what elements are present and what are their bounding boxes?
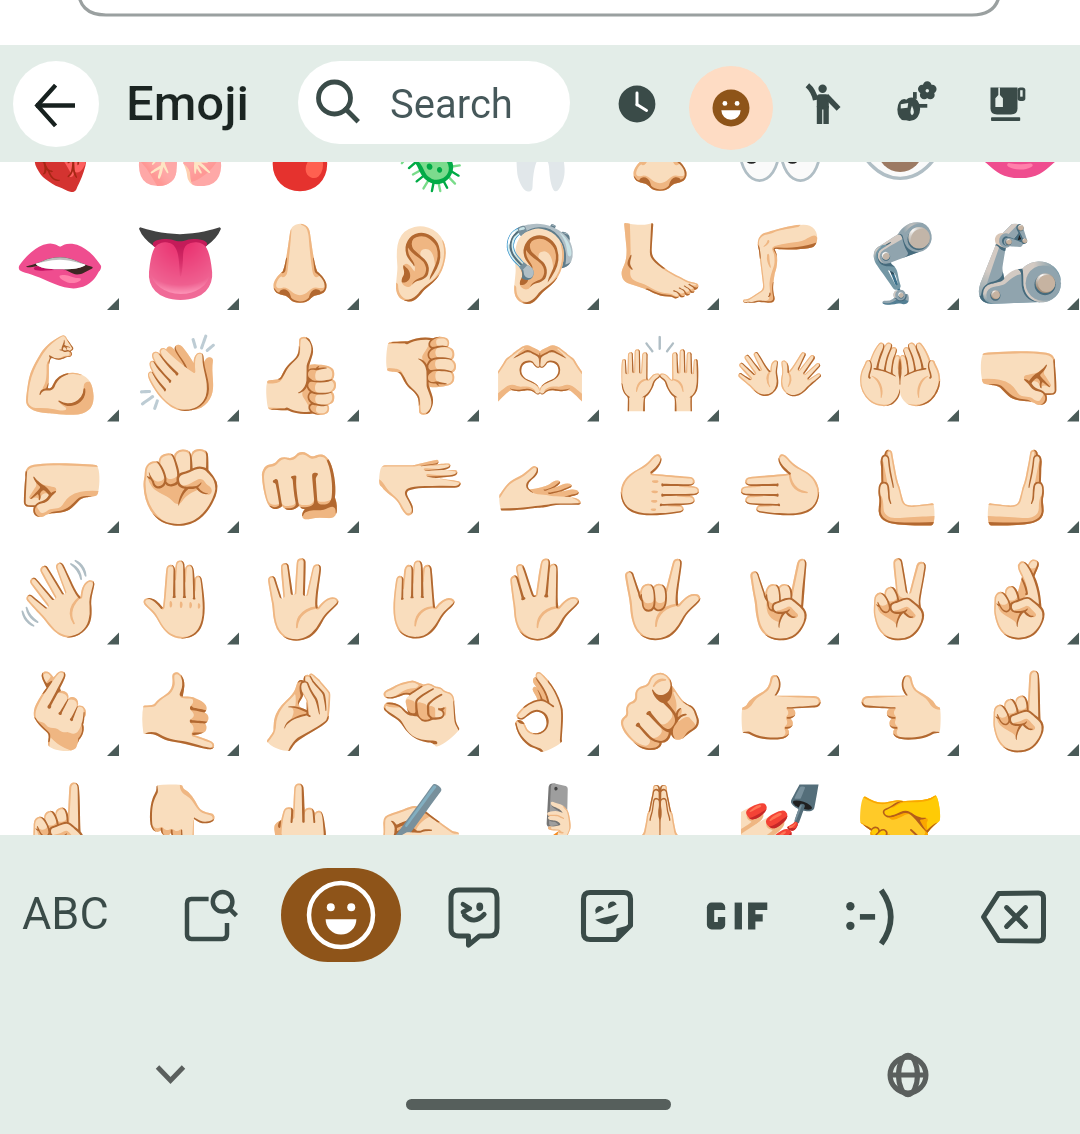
button[interactable]: 🫱🏻	[600, 423, 720, 535]
button[interactable]: 🩸	[240, 162, 360, 199]
staticText: 🤙🏻	[133, 667, 227, 755]
staticText: 👃🏻	[613, 162, 707, 195]
button[interactable]: 🫳🏻	[360, 423, 480, 535]
staticText: 🤜🏻	[973, 331, 1067, 419]
button[interactable]: Change language	[848, 1033, 968, 1117]
button[interactable]: 🤟🏻	[600, 535, 720, 647]
button[interactable]: 💪🏻	[0, 311, 120, 423]
button[interactable]: 🖕🏻	[240, 759, 360, 835]
button[interactable]: 🖐🏻	[240, 535, 360, 647]
button[interactable]: ✋🏻	[360, 535, 480, 647]
button[interactable]: 👇🏻	[120, 759, 240, 835]
button[interactable]: 👐🏻	[720, 311, 840, 423]
button[interactable]: 🫷🏻	[840, 423, 960, 535]
button[interactable]: 🫶🏻	[480, 311, 600, 423]
button[interactable]: 🤛🏻	[0, 423, 120, 535]
button[interactable]: 🦠	[360, 162, 480, 199]
button[interactable]: 🤝	[840, 759, 960, 835]
staticText: 🫲🏻	[733, 443, 827, 531]
staticText: 🖐🏻	[253, 555, 347, 643]
button[interactable]: ABC	[5, 858, 125, 968]
button[interactable]: ☝🏻	[0, 759, 120, 835]
button[interactable]: 👍🏻	[240, 311, 360, 423]
button[interactable]: 🤘🏻	[720, 535, 840, 647]
button[interactable]: 👎🏻	[360, 311, 480, 423]
staticText: 🤳🏻	[493, 779, 587, 835]
button[interactable]: ✊🏻	[120, 423, 240, 535]
button[interactable]: 👃🏻	[600, 162, 720, 199]
button[interactable]: Hide keyboard	[110, 1033, 230, 1117]
staticText: 🤛🏻	[13, 443, 107, 531]
staticText: 🫶🏻	[493, 331, 587, 419]
button[interactable]: 👈🏻	[840, 647, 960, 759]
button[interactable]: 👄	[960, 162, 1080, 199]
staticText: 🤚🏻	[133, 555, 227, 643]
staticText: 🖕🏻	[253, 779, 347, 835]
button[interactable]: 🦿	[840, 199, 960, 311]
staticText: 🫀	[13, 162, 107, 195]
button[interactable]: 🫁	[120, 162, 240, 199]
button[interactable]: ☝🏻	[960, 647, 1080, 759]
button[interactable]: 🤜🏻	[960, 311, 1080, 423]
button[interactable]: 🫰🏻	[0, 647, 120, 759]
button[interactable]: 👀	[720, 162, 840, 199]
staticText: 👀	[733, 162, 827, 195]
button[interactable]: Recent	[595, 62, 679, 146]
button[interactable]: 🫦	[0, 199, 120, 311]
button[interactable]: 👏🏻	[120, 311, 240, 423]
button[interactable]: Search	[298, 61, 570, 144]
button[interactable]: 🫵🏻	[600, 647, 720, 759]
button[interactable]: Emoji	[281, 868, 401, 962]
button[interactable]: 🦻🏻	[480, 199, 600, 311]
button[interactable]: Smileys and people	[689, 66, 773, 150]
staticText: 🦶🏻	[613, 219, 707, 307]
button[interactable]: Back	[13, 61, 99, 147]
button[interactable]: 👌🏻	[480, 647, 600, 759]
staticText: 🩸	[253, 162, 347, 195]
button[interactable]: Backspace	[952, 865, 1072, 975]
button[interactable]: 🤳🏻	[480, 759, 600, 835]
button[interactable]: 🤙🏻	[120, 647, 240, 759]
button[interactable]: 🫴🏻	[480, 423, 600, 535]
button[interactable]: 🙌🏻	[600, 311, 720, 423]
button[interactable]: 🫲🏻	[720, 423, 840, 535]
button[interactable]: 🫸🏻	[960, 423, 1080, 535]
staticText: 🦿	[853, 219, 947, 307]
button[interactable]: 👅	[120, 199, 240, 311]
button[interactable]: Animals and nature	[874, 62, 958, 146]
staticText: 🤲🏻	[853, 331, 947, 419]
button[interactable]: 👉🏻	[720, 647, 840, 759]
button[interactable]: 💅🏻	[720, 759, 840, 835]
button[interactable]: 🫀	[0, 162, 120, 199]
button[interactable]: People	[781, 62, 865, 146]
staticText: 🦾	[973, 219, 1067, 307]
staticText: ✍🏻	[373, 779, 467, 835]
button[interactable]: 🦵🏻	[720, 199, 840, 311]
button[interactable]: 👋🏻	[0, 535, 120, 647]
button[interactable]: Food and drink	[967, 62, 1051, 146]
button[interactable]: Emoji kitchen	[412, 861, 532, 971]
button[interactable]: 🦶🏻	[600, 199, 720, 311]
staticText: 🖖🏻	[493, 555, 587, 643]
button[interactable]: 👂🏻	[360, 199, 480, 311]
button[interactable]: GIF	[677, 864, 797, 974]
button[interactable]: 🤲🏻	[840, 311, 960, 423]
button[interactable]: ✌🏻	[840, 535, 960, 647]
button[interactable]: Search emoji	[146, 865, 266, 975]
button[interactable]: 🦷	[480, 162, 600, 199]
button[interactable]: 👁️	[840, 162, 960, 199]
button[interactable]: 🦾	[960, 199, 1080, 311]
button[interactable]: 👃🏻	[240, 199, 360, 311]
button[interactable]: 🤏🏻	[360, 647, 480, 759]
button[interactable]: ✍🏻	[360, 759, 480, 835]
button[interactable]: 🙏🏻	[600, 759, 720, 835]
staticText: ✊🏻	[133, 443, 227, 531]
button[interactable]: 🖖🏻	[480, 535, 600, 647]
button[interactable]: 👊🏻	[240, 423, 360, 535]
button[interactable]: Stickers	[545, 863, 665, 973]
button[interactable]: 🤌🏻	[240, 647, 360, 759]
button[interactable]: 🤚🏻	[120, 535, 240, 647]
button[interactable]: 🤞🏻	[960, 535, 1080, 647]
button[interactable]: Emoticons	[810, 863, 930, 973]
